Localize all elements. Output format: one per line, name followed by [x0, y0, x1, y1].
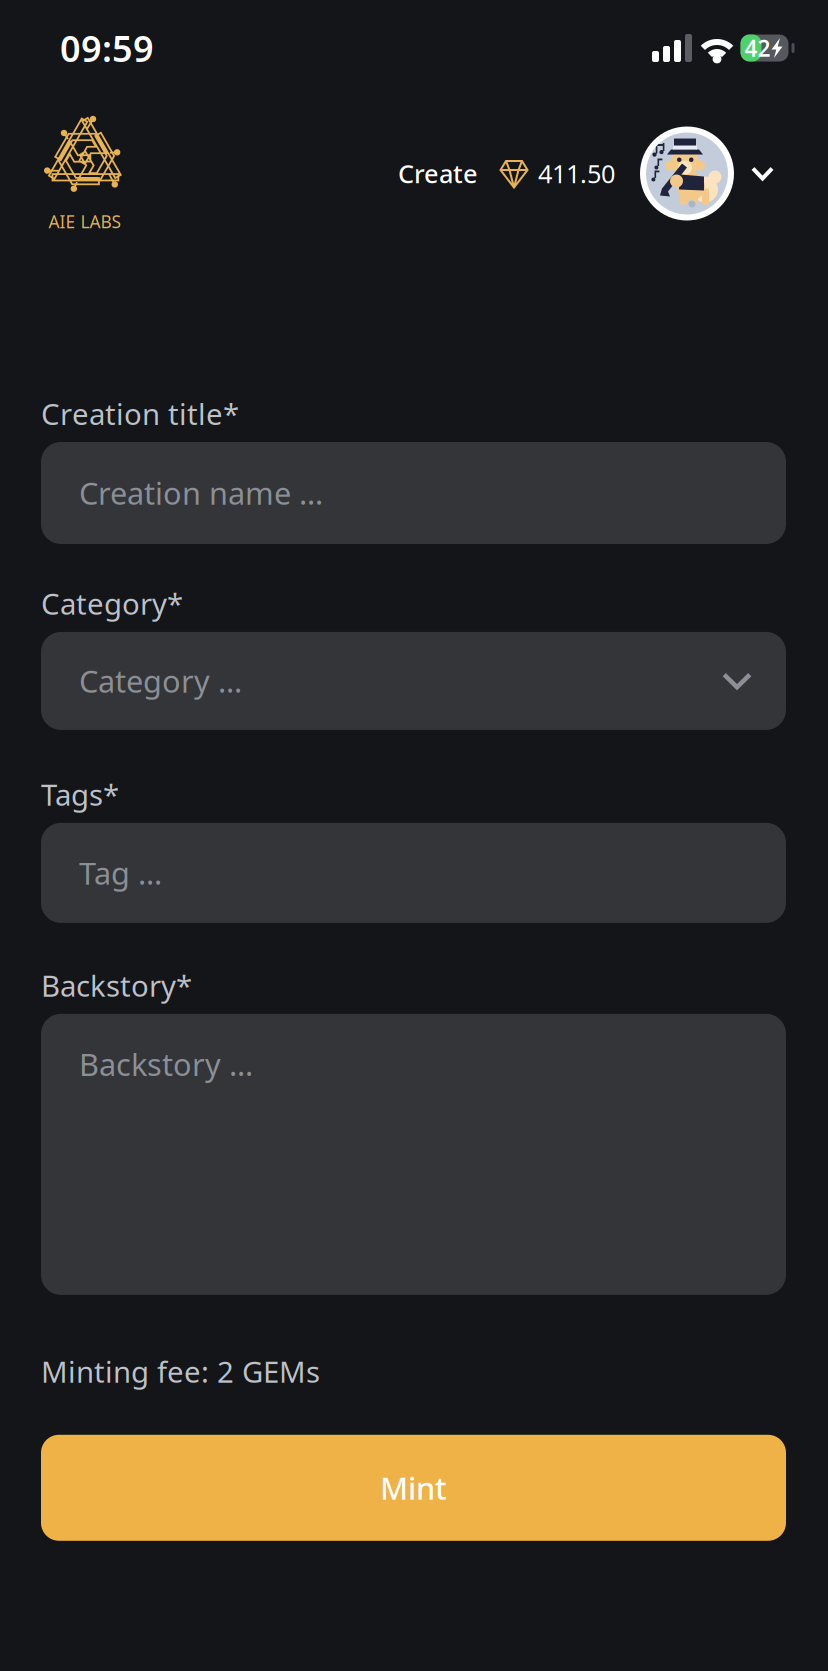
staticText: 09:59	[60, 24, 154, 72]
button[interactable]: Category ...	[41, 632, 786, 730]
staticText: Creation title*	[41, 394, 239, 433]
staticText: Backstory*	[41, 966, 192, 1005]
staticText: Creation name ...	[79, 473, 323, 513]
button[interactable]: Mint	[41, 1435, 786, 1541]
staticText: AIE LABS	[48, 210, 121, 233]
staticText: Create	[398, 157, 478, 190]
button[interactable]: Account menu	[640, 126, 774, 220]
button[interactable]: Creation name ...	[41, 442, 786, 544]
button[interactable]: AIE Labs	[41, 114, 129, 233]
staticText: Backstory ...	[79, 1044, 253, 1084]
button[interactable]: Tag ...	[41, 823, 786, 923]
staticText: Category*	[41, 584, 183, 623]
button[interactable]: Backstory ...	[41, 1014, 786, 1295]
button[interactable]: Gem balance 411.50	[500, 157, 615, 190]
staticText: Tags*	[41, 775, 119, 814]
button[interactable]: Create	[398, 157, 478, 190]
staticText: Mint	[380, 1467, 447, 1508]
staticText: 411.50	[538, 157, 615, 190]
staticText: Category ...	[79, 661, 242, 701]
staticText: Tag ...	[79, 852, 162, 893]
staticText: Minting fee: 2 GEMs	[41, 1352, 320, 1391]
staticText: 42	[744, 33, 770, 63]
